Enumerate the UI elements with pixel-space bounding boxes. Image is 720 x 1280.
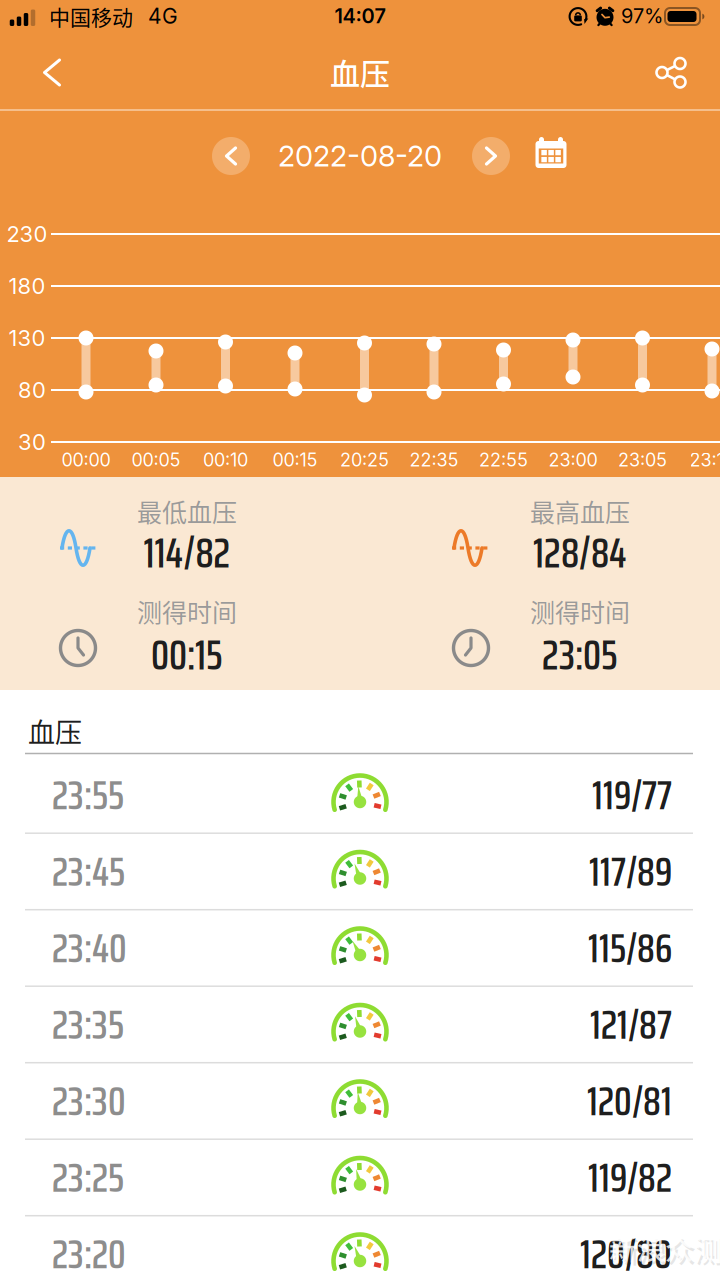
staticText: 114/82 <box>143 520 230 586</box>
button[interactable]: Share <box>648 50 692 94</box>
staticText: 119/77 <box>592 763 672 827</box>
button[interactable]: Previous day <box>209 134 253 178</box>
staticText: 测得时间 <box>137 593 237 629</box>
staticText: 23:20 <box>52 1222 126 1280</box>
staticText: 23:45 <box>52 839 125 904</box>
staticText: 23:40 <box>52 916 127 980</box>
staticText: 00:00 <box>61 449 110 471</box>
staticText: 20:25 <box>340 449 389 471</box>
staticText: 128/84 <box>533 520 627 586</box>
button[interactable]: Next day <box>469 134 513 178</box>
staticText: 117/89 <box>589 839 672 904</box>
staticText: 130 <box>8 325 45 351</box>
staticText: 97% <box>621 4 663 28</box>
staticText: 测得时间 <box>530 593 630 629</box>
staticText: 180 <box>8 273 45 299</box>
staticText: 2022-08-20 <box>278 138 442 174</box>
staticText: 120/81 <box>587 1069 672 1133</box>
staticText: 23:05 <box>542 622 618 688</box>
staticText: 血压 <box>28 711 82 751</box>
button[interactable]: Back <box>30 50 74 94</box>
staticText: 23:55 <box>52 763 124 827</box>
button[interactable]: Calendar <box>528 134 573 178</box>
staticText: 120/80 <box>580 1222 672 1280</box>
staticText: 23:25 <box>52 1145 124 1210</box>
staticText: 22:55 <box>479 449 528 471</box>
staticText: 115/86 <box>588 916 672 980</box>
staticText: 4G <box>148 3 178 29</box>
staticText: 最高血压 <box>530 493 630 529</box>
staticText: 230 <box>6 221 47 247</box>
staticText: 00:05 <box>131 449 180 471</box>
staticText: 00:15 <box>151 622 223 688</box>
staticText: 23:05 <box>618 449 667 471</box>
staticText: 121/87 <box>590 992 672 1057</box>
staticText: 23:00 <box>548 449 597 471</box>
staticText: 23:35 <box>52 992 124 1057</box>
staticText: 119/82 <box>588 1145 672 1210</box>
staticText: 中国移动 <box>49 1 133 31</box>
staticText: 新浪众测 <box>612 1231 720 1271</box>
staticText: 23:10 <box>689 449 720 471</box>
staticText: 22:35 <box>409 449 458 471</box>
staticText: 00:10 <box>203 449 248 471</box>
staticText: 血压 <box>330 50 390 94</box>
staticText: 最低血压 <box>137 493 237 529</box>
staticText: 新浪众测 <box>609 1228 720 1268</box>
staticText: 80 <box>18 377 46 403</box>
staticText: 14:07 <box>334 4 385 28</box>
staticText: 30 <box>18 429 46 455</box>
staticText: 23:30 <box>52 1069 126 1133</box>
staticText: 00:15 <box>272 449 317 471</box>
